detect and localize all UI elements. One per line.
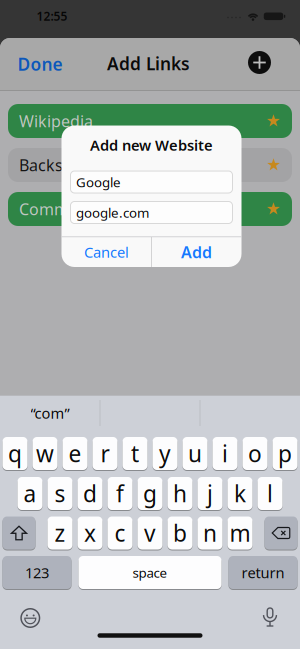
button[interactable]: a bbox=[17, 476, 42, 510]
staticText: s bbox=[54, 478, 65, 508]
staticText: Backspace bbox=[19, 154, 99, 176]
staticText: Wikipedia bbox=[19, 110, 93, 132]
button[interactable]: Add bbox=[152, 237, 240, 267]
staticText: Add new Website bbox=[90, 135, 213, 155]
button[interactable]: v bbox=[137, 516, 162, 550]
button[interactable]: Wikipedia bbox=[8, 104, 292, 138]
staticText: j bbox=[207, 478, 213, 508]
staticText: x bbox=[84, 518, 96, 548]
staticText: m bbox=[229, 518, 250, 548]
staticText: f bbox=[116, 478, 124, 508]
staticText: i bbox=[222, 438, 228, 468]
staticText: Done bbox=[17, 52, 62, 75]
button[interactable]: k bbox=[227, 476, 252, 510]
staticText: b bbox=[173, 518, 187, 548]
button[interactable]: Command bbox=[8, 192, 292, 226]
button[interactable]: t bbox=[122, 436, 147, 470]
button[interactable]: d bbox=[77, 476, 102, 510]
staticText: Add Links bbox=[107, 52, 190, 75]
button[interactable]: c bbox=[107, 516, 132, 550]
button[interactable]: i bbox=[212, 436, 237, 470]
staticText: v bbox=[144, 518, 156, 548]
staticText: google.com bbox=[76, 204, 149, 221]
button[interactable]: “com” bbox=[1, 396, 99, 430]
staticText: u bbox=[188, 438, 202, 468]
staticText: Command bbox=[19, 198, 98, 220]
button[interactable]: r bbox=[92, 436, 117, 470]
button[interactable]: f bbox=[107, 476, 132, 510]
button[interactable]: 123 bbox=[2, 555, 71, 589]
button[interactable]: h bbox=[167, 476, 192, 510]
staticText: c bbox=[114, 518, 125, 548]
staticText: z bbox=[54, 518, 65, 548]
staticText: r bbox=[100, 438, 109, 468]
staticText: “com” bbox=[30, 403, 69, 423]
button[interactable]: n bbox=[197, 516, 222, 550]
staticText: 123 bbox=[25, 563, 49, 582]
button[interactable]: b bbox=[167, 516, 192, 550]
staticText: w bbox=[36, 438, 54, 468]
button[interactable]: Shift bbox=[2, 516, 35, 550]
button[interactable]: p bbox=[272, 436, 297, 470]
staticText: l bbox=[267, 478, 273, 508]
button[interactable]: Dictation bbox=[263, 608, 277, 627]
staticText: Add bbox=[181, 241, 212, 263]
button[interactable]: e bbox=[62, 436, 87, 470]
staticText: d bbox=[83, 478, 97, 508]
button[interactable]: x bbox=[77, 516, 102, 550]
button[interactable]: l bbox=[257, 476, 282, 510]
staticText: h bbox=[173, 478, 187, 508]
button[interactable]: g bbox=[137, 476, 162, 510]
staticText: y bbox=[159, 438, 171, 468]
button[interactable]: Google bbox=[70, 171, 232, 193]
button[interactable]: Done bbox=[17, 52, 62, 75]
staticText: o bbox=[248, 438, 262, 468]
button[interactable]: o bbox=[242, 436, 267, 470]
staticText: t bbox=[131, 438, 139, 468]
button[interactable]: Delete bbox=[264, 516, 297, 550]
staticText: q bbox=[8, 438, 22, 468]
button[interactable]: space bbox=[78, 555, 221, 589]
staticText: k bbox=[234, 478, 246, 508]
button[interactable]: google.com bbox=[70, 201, 232, 223]
button[interactable]: w bbox=[32, 436, 57, 470]
button[interactable]: j bbox=[197, 476, 222, 510]
button[interactable]: y bbox=[152, 436, 177, 470]
staticText: Google bbox=[76, 173, 121, 191]
button[interactable]: return bbox=[228, 555, 297, 589]
staticText: n bbox=[203, 518, 217, 548]
staticText: p bbox=[278, 438, 292, 468]
staticText: return bbox=[241, 563, 284, 582]
button[interactable]: Emoji bbox=[21, 609, 40, 627]
staticText: e bbox=[68, 438, 81, 468]
staticText: space bbox=[132, 564, 167, 581]
button[interactable]: Cancel bbox=[62, 237, 150, 267]
staticText: Cancel bbox=[84, 242, 129, 262]
button[interactable]: Add bbox=[248, 51, 271, 74]
staticText: g bbox=[143, 478, 157, 508]
button[interactable]: s bbox=[47, 476, 72, 510]
staticText: a bbox=[23, 478, 36, 508]
button[interactable]: z bbox=[47, 516, 72, 550]
button[interactable]: Backspace bbox=[8, 148, 292, 182]
staticText: 12:55 bbox=[36, 8, 67, 24]
button[interactable]: u bbox=[182, 436, 207, 470]
button[interactable]: m bbox=[227, 516, 252, 550]
button[interactable]: q bbox=[2, 436, 27, 470]
